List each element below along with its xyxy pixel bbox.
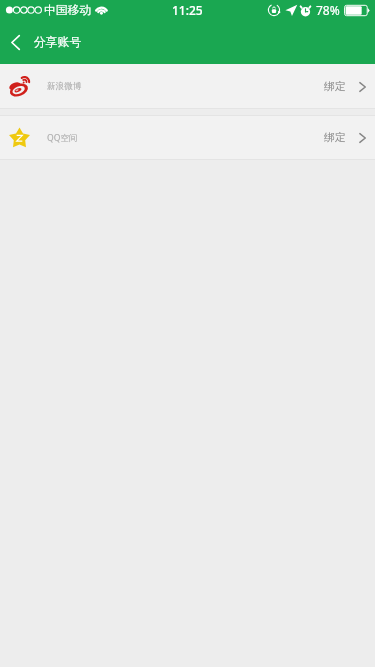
staticText: 中国移动 xyxy=(44,3,92,18)
staticText: 绑定 xyxy=(324,131,346,145)
staticText: 11:25 xyxy=(172,2,203,18)
staticText: 绑定 xyxy=(324,80,346,94)
button[interactable]: 新浪微博 xyxy=(0,64,375,109)
staticText: 新浪微博 xyxy=(47,81,82,92)
staticText: 分享账号 xyxy=(34,35,82,50)
staticText: QQ空间 xyxy=(47,132,78,144)
staticText: 78% xyxy=(316,2,340,18)
button[interactable]: QQ空间 xyxy=(0,115,375,160)
button[interactable]: Back xyxy=(0,20,30,64)
